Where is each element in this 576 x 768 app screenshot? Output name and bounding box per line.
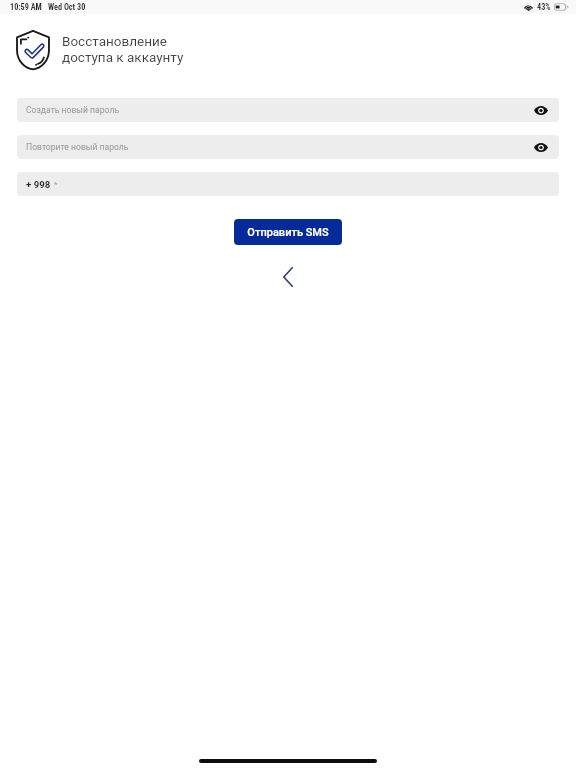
button[interactable]: Show password [532,138,550,156]
button[interactable]: Отправить SMS [234,219,342,245]
staticText: 10:59 AM [10,2,42,12]
button[interactable]: Создать новый пароль [17,98,559,122]
staticText: Отправить SMS [247,226,329,239]
staticText: Wed Oct 30 [48,2,86,12]
other: Account security shield [16,30,50,70]
button[interactable]: Show password [532,101,550,119]
button[interactable]: Повторите новый пароль [17,135,559,159]
button[interactable]: + 998 [17,172,559,196]
staticText: Восстановление [62,33,167,49]
staticText: * [54,180,58,189]
staticText: доступа к аккаунту [62,49,184,65]
staticText: 43% [537,2,551,12]
staticText: Создать новый пароль [26,105,120,115]
staticText: + 998 [26,179,51,190]
staticText: Повторите новый пароль [26,142,129,152]
button[interactable]: Back [272,261,304,293]
